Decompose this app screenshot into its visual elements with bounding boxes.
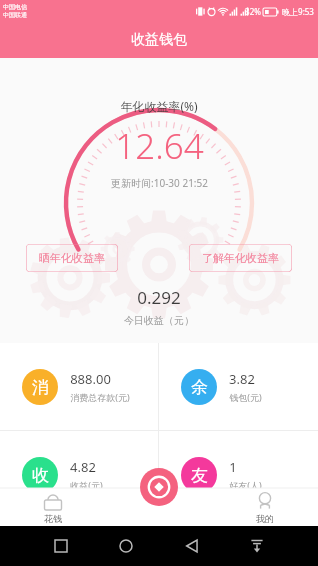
staticText: 3.82 — [229, 370, 255, 388]
button[interactable]: 了解年化收益率 — [189, 244, 292, 272]
staticText: 晒年化收益率 — [39, 251, 105, 265]
button[interactable]: 收 — [0, 431, 158, 518]
staticText: 中国联通 — [3, 11, 27, 19]
button[interactable]: Back — [177, 531, 207, 561]
staticText: 收益(元) — [70, 479, 103, 491]
button[interactable]: 余 — [159, 343, 318, 430]
staticText: 32% — [245, 6, 261, 17]
button[interactable]: Home — [111, 531, 141, 561]
staticText: 收 — [32, 465, 49, 486]
button[interactable]: 晒年化收益率 — [26, 244, 118, 272]
staticText: 友 — [191, 465, 208, 486]
staticText: 余 — [191, 377, 208, 398]
button[interactable]: Recents — [46, 531, 76, 561]
staticText: 好友(人) — [229, 479, 262, 491]
button[interactable]: Hide keyboard — [242, 531, 272, 561]
staticText: 花钱 — [44, 513, 62, 524]
staticText: 更新时间:10-30 21:52 — [111, 176, 208, 190]
staticText: 年化收益率(%) — [120, 98, 198, 114]
staticText: 0.292 — [137, 286, 181, 309]
staticText: 888.00 — [70, 370, 111, 388]
staticText: 消费总存款(元) — [70, 391, 130, 403]
button[interactable]: 生钱 — [139, 468, 179, 506]
staticText: 中国电信 — [3, 3, 27, 11]
staticText: 12.64 — [115, 122, 204, 170]
staticText: 晚上9:53 — [282, 6, 314, 17]
button[interactable]: 友 — [159, 431, 318, 518]
staticText: 钱包(元) — [229, 391, 262, 403]
button[interactable]: 消 — [0, 343, 158, 430]
staticText: 消 — [32, 377, 49, 398]
staticText: 我的 — [256, 513, 274, 524]
button[interactable]: 我的 — [212, 488, 318, 526]
button[interactable]: 花钱 — [0, 488, 106, 526]
staticText: 了解年化收益率 — [202, 251, 279, 265]
staticText: 4.82 — [70, 458, 96, 476]
staticText: 1 — [229, 458, 237, 476]
staticText: 今日收益（元） — [124, 314, 194, 327]
staticText: 收益钱包 — [131, 31, 187, 49]
